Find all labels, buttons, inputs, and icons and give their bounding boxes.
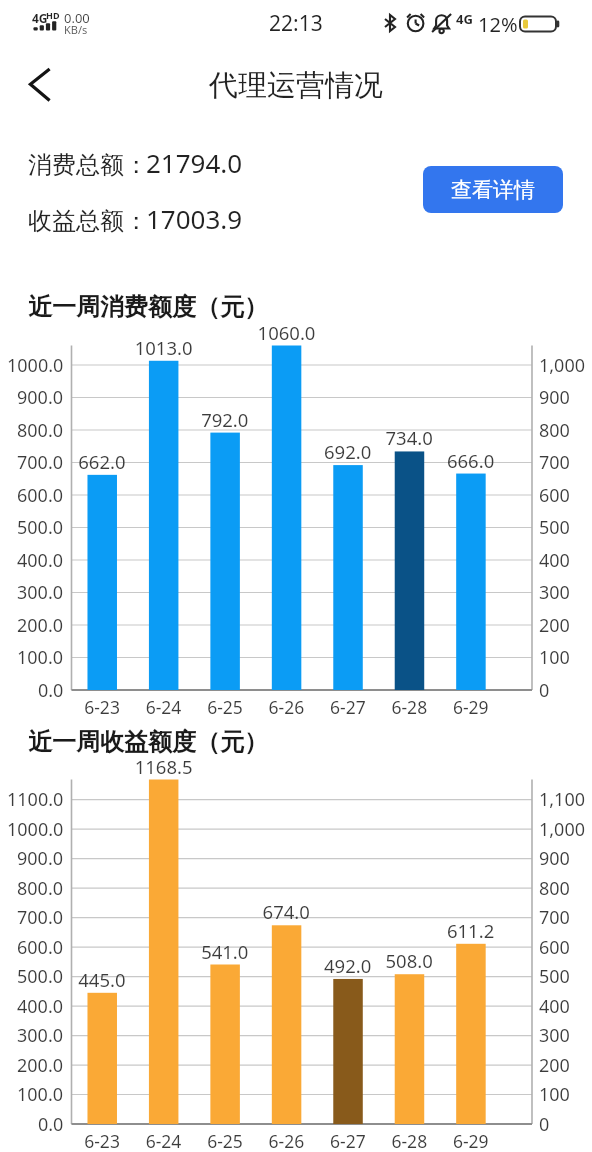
staticText: 21794.0 — [146, 145, 243, 180]
staticText: 代理运营情况 — [209, 67, 383, 104]
staticText: 17003.9 — [146, 201, 243, 236]
button[interactable]: Back — [16, 61, 64, 109]
staticText: KB/s — [64, 22, 88, 37]
staticText: 4G — [32, 10, 48, 26]
staticText: 查看详情 — [451, 177, 535, 203]
staticText: 0.00 — [64, 9, 90, 27]
staticText: 消费总额： — [28, 150, 148, 180]
staticText: 收益总额： — [28, 206, 148, 236]
button[interactable]: 查看详情 — [423, 166, 563, 213]
staticText: 4G — [456, 10, 473, 28]
staticText: 22:13 — [269, 9, 323, 38]
staticText: HD — [46, 9, 60, 21]
staticText: 12% — [478, 11, 518, 38]
